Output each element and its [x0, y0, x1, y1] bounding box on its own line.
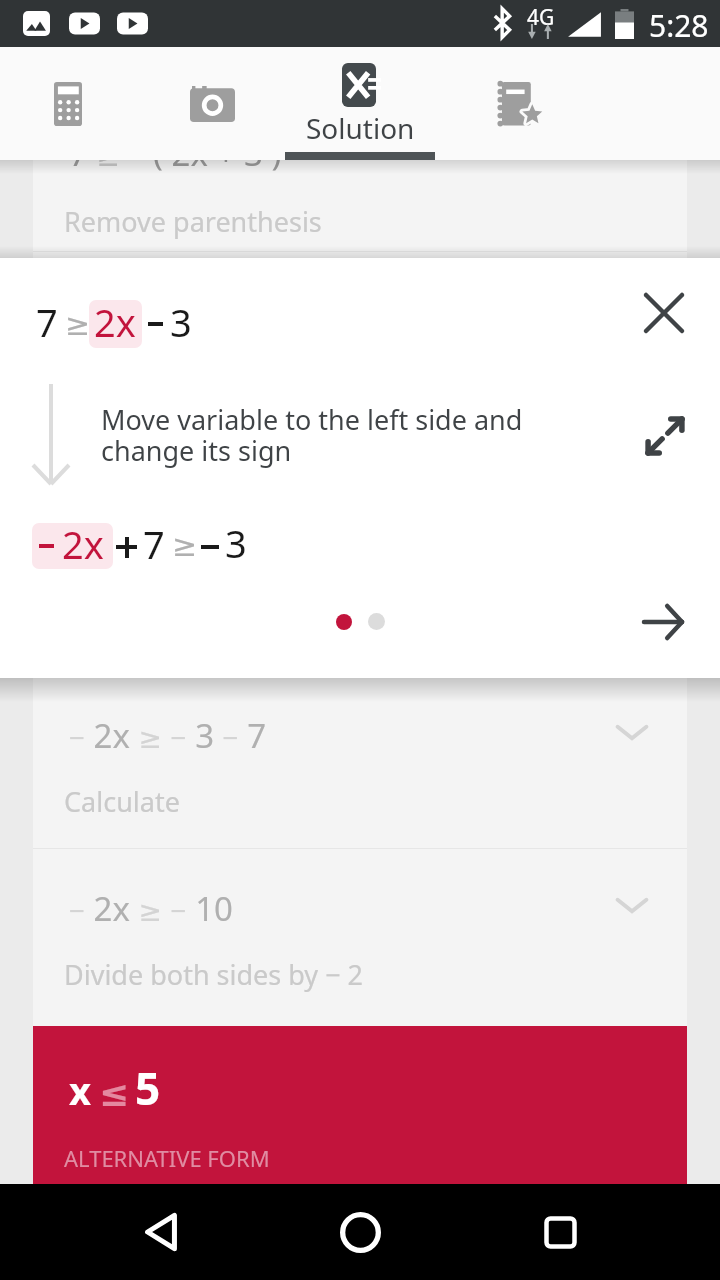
- staticText: 7: [36, 296, 58, 348]
- button[interactable]: Expand: [635, 406, 695, 466]
- button[interactable]: x: [33, 1026, 687, 1184]
- button[interactable]: Next step: [634, 592, 694, 652]
- staticText: ≤: [99, 1073, 130, 1115]
- button[interactable]: Home: [325, 1197, 395, 1267]
- staticText: ≥: [65, 307, 91, 342]
- staticText: − 2x ≥ − 3 − 7: [69, 713, 267, 758]
- staticText: Calculate: [64, 783, 180, 820]
- button[interactable]: − 2x ≥ − 10: [33, 848, 687, 1026]
- staticText: x: [69, 1064, 91, 1116]
- staticText: ≥: [172, 528, 198, 563]
- staticText: 4G: [527, 3, 555, 32]
- button[interactable]: − 2x ≥ − 3 − 7: [33, 675, 687, 848]
- staticText: Solution: [306, 109, 415, 147]
- staticText: 2x: [94, 296, 136, 348]
- button[interactable]: Solution: [285, 47, 435, 160]
- button[interactable]: Back: [126, 1197, 196, 1267]
- button[interactable]: Tab: [8, 47, 128, 160]
- button[interactable]: Tab: [152, 47, 272, 160]
- staticText: 2x: [62, 518, 104, 570]
- button[interactable]: Tab: [460, 47, 580, 160]
- staticText: 5:28: [649, 5, 709, 46]
- staticText: 3: [225, 517, 247, 569]
- button[interactable]: Close: [634, 283, 694, 343]
- button[interactable]: Recent apps: [525, 1197, 595, 1267]
- staticText: Move variable to the left side and chang…: [101, 401, 531, 469]
- staticText: 5: [135, 1058, 161, 1118]
- staticText: 7 ≥ − ( 2x + 3 ): [69, 131, 282, 176]
- staticText: 7: [143, 518, 165, 570]
- staticText: − 2x ≥ − 10: [69, 886, 233, 931]
- staticText: Remove parenthesis: [64, 203, 322, 240]
- staticText: ALTERNATIVE FORM: [64, 1143, 270, 1173]
- button[interactable]: 7 ≥ − ( 2x + 3 ): [33, 96, 687, 250]
- staticText: 3: [170, 296, 192, 348]
- staticText: Divide both sides by − 2: [64, 956, 364, 993]
